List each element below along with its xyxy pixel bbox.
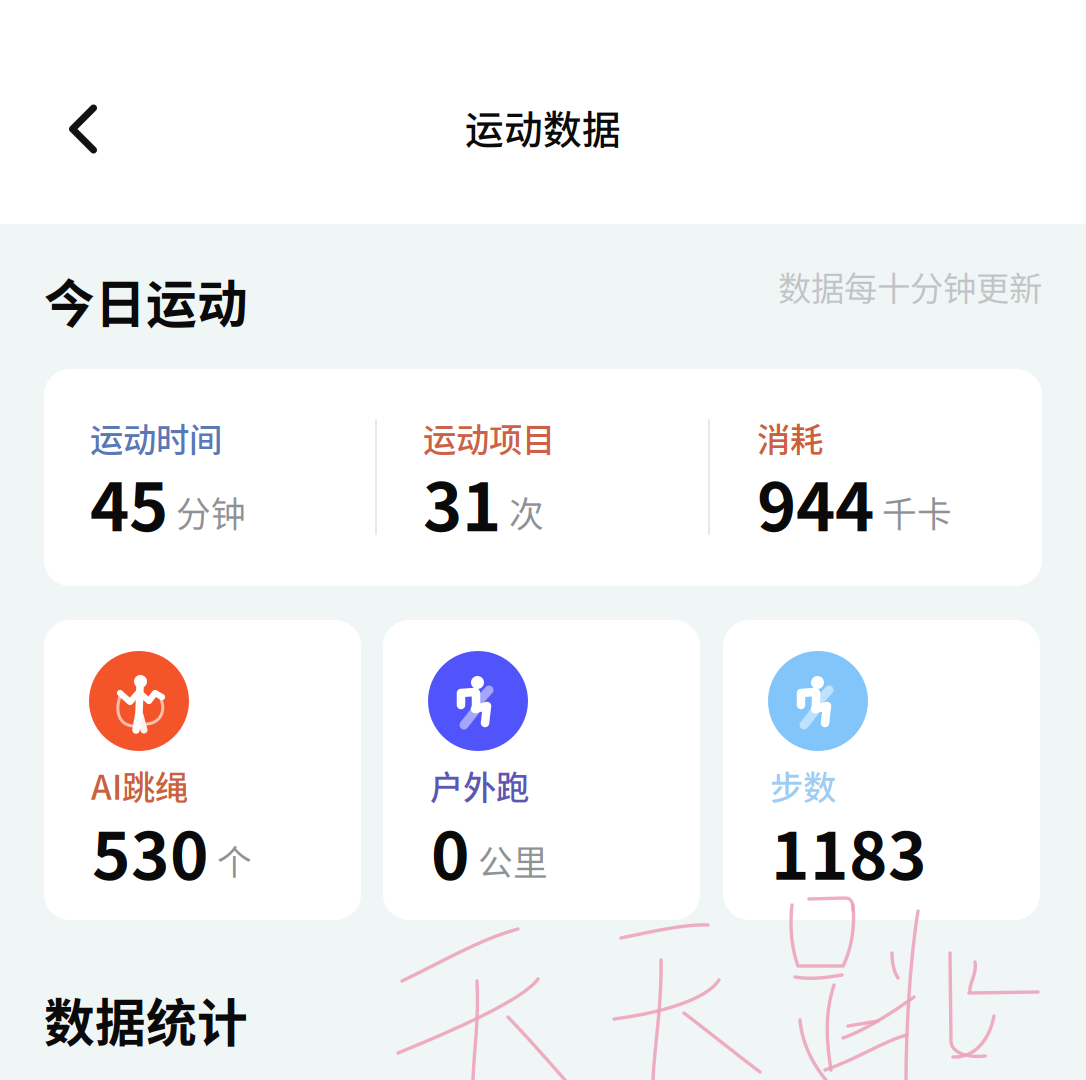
staticText: AI跳绳 xyxy=(91,761,188,809)
staticText: 944 xyxy=(757,454,874,550)
staticText: 千卡 xyxy=(882,487,952,537)
staticText: 运动时间 xyxy=(90,413,222,462)
staticText: 运动数据 xyxy=(465,99,621,155)
staticText: 数据每十分钟更新 xyxy=(778,262,1042,310)
button[interactable]: Back xyxy=(38,84,128,174)
staticText: 1183 xyxy=(771,804,927,899)
staticText: 31 xyxy=(423,454,501,550)
staticText: 消耗 xyxy=(757,413,823,462)
staticText: 45 xyxy=(90,454,168,550)
button[interactable]: 步数 xyxy=(723,620,1040,920)
staticText: 个 xyxy=(217,836,252,886)
staticText: 次 xyxy=(509,487,544,537)
staticText: 今日运动 xyxy=(44,264,248,337)
button[interactable]: 户外跑 xyxy=(383,620,700,920)
staticText: 步数 xyxy=(770,761,836,809)
staticText: 公里 xyxy=(478,836,548,886)
staticText: 530 xyxy=(92,804,209,899)
staticText: 户外跑 xyxy=(430,761,529,809)
staticText: 运动项目 xyxy=(423,413,555,462)
button[interactable]: AI跳绳 xyxy=(44,620,361,920)
staticText: 数据统计 xyxy=(44,983,248,1056)
staticText: 0 xyxy=(431,804,470,899)
staticText: 分钟 xyxy=(176,487,246,537)
